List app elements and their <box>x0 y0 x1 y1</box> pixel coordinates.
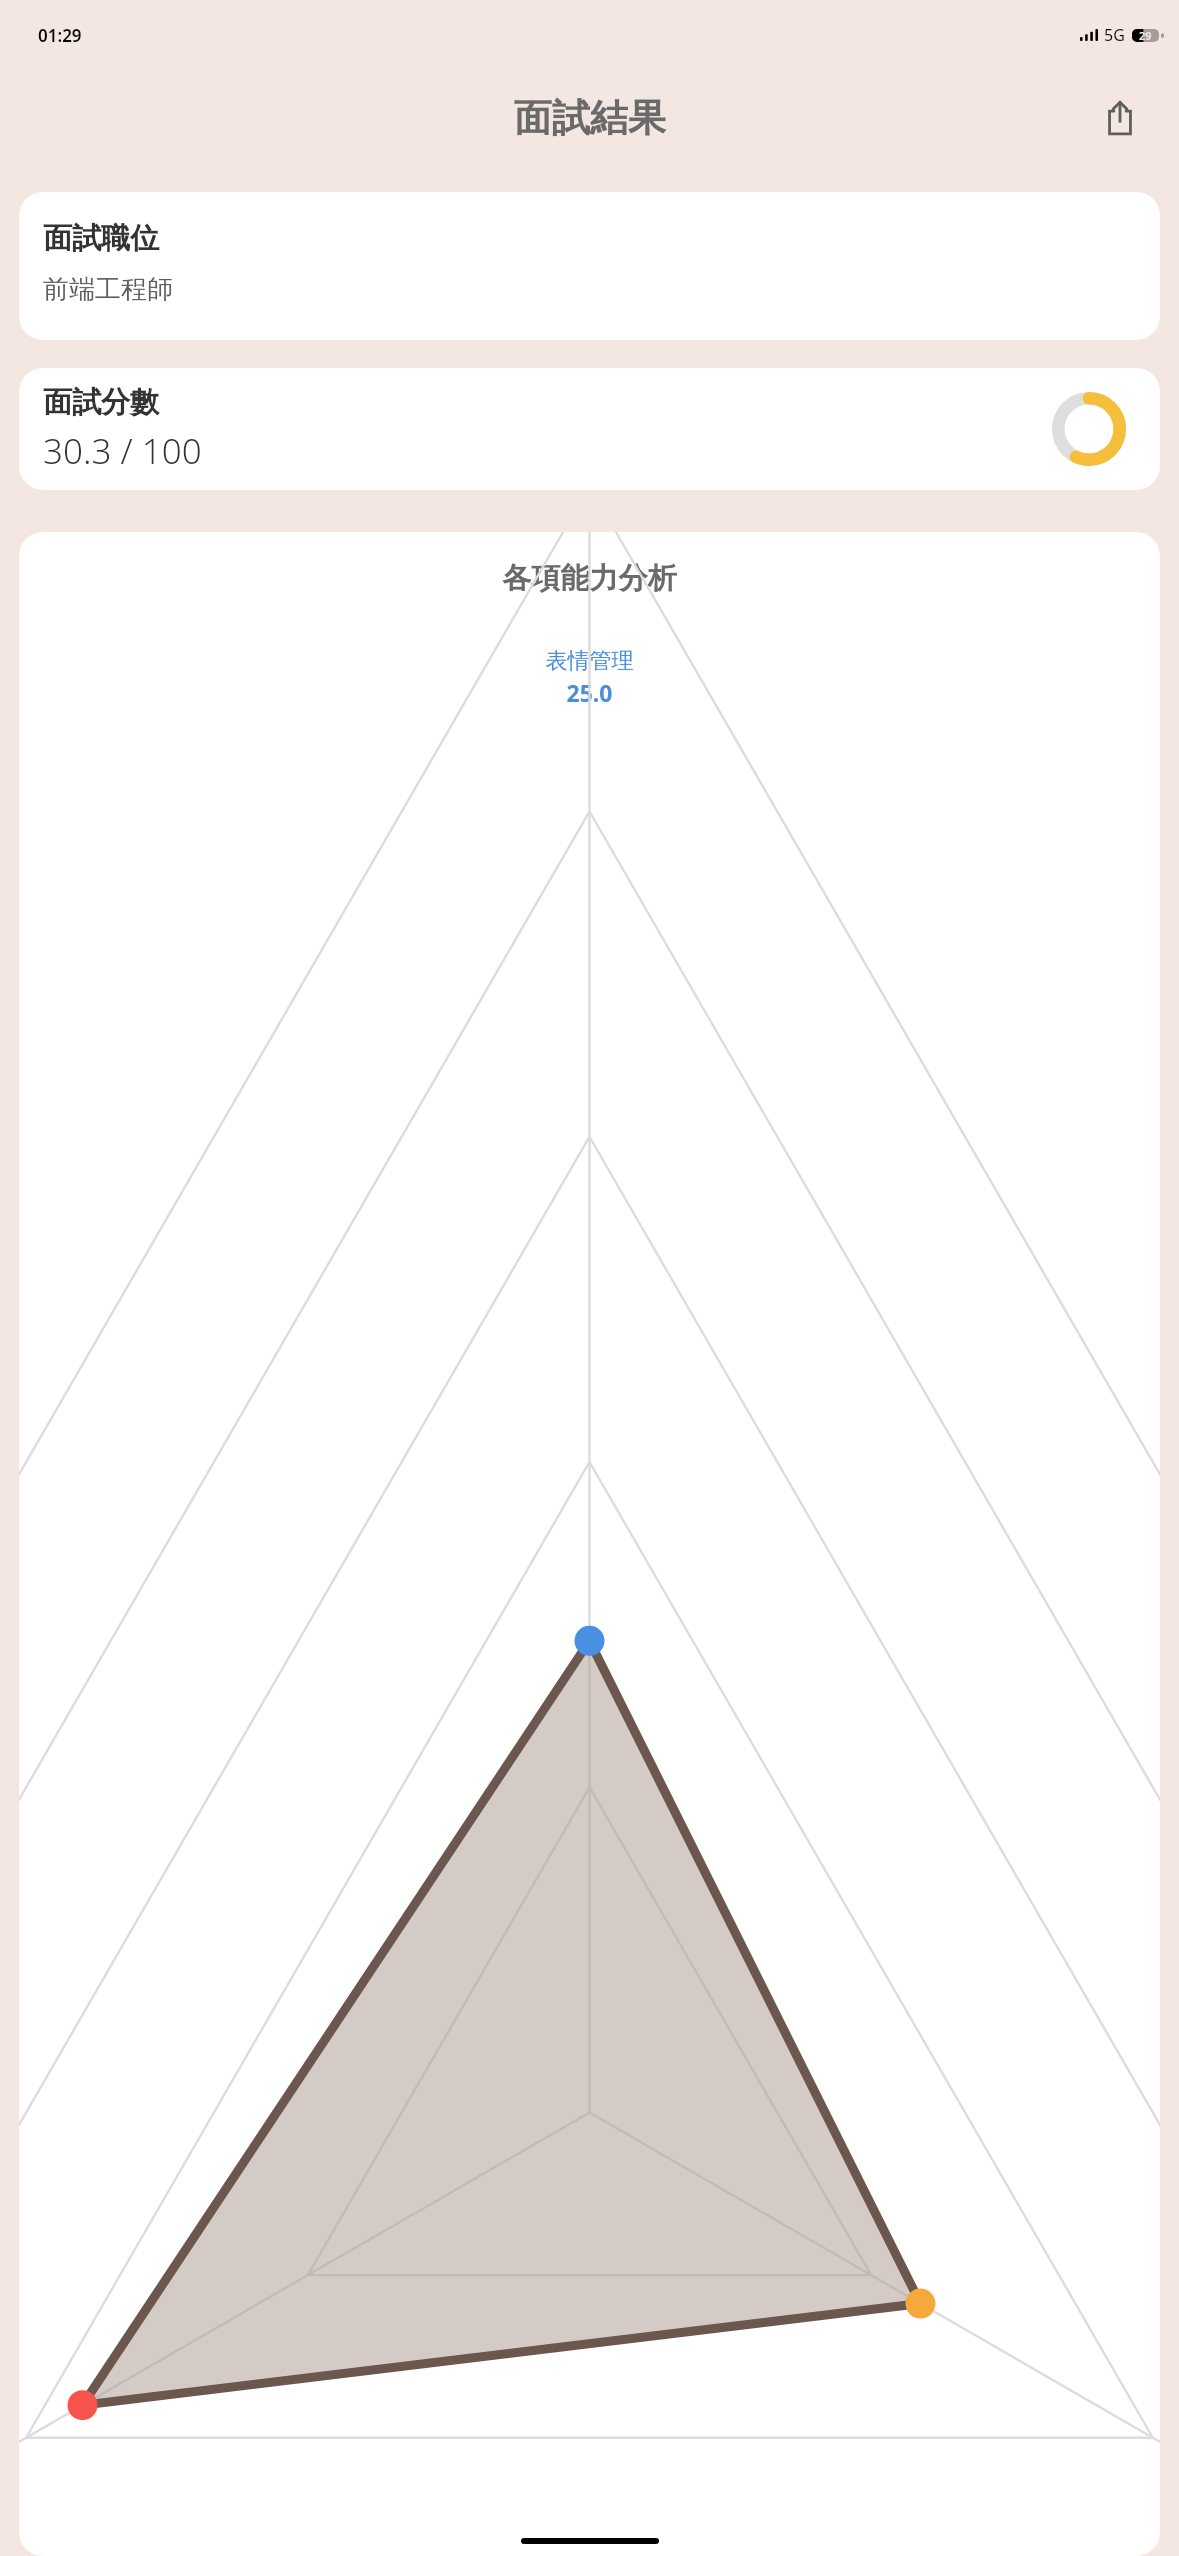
staticText: 前端工程師 <box>43 273 173 306</box>
staticText: 表情管理 <box>19 647 1160 675</box>
button[interactable]: 各項能力分析 <box>19 532 1160 2556</box>
staticText: 30.3 / 100 <box>43 427 202 475</box>
staticText: 各項能力分析 <box>19 560 1160 597</box>
staticText: 面試結果 <box>514 94 666 142</box>
staticText: 面試職位 <box>43 220 159 257</box>
button[interactable]: 面試分數 <box>19 368 1160 490</box>
staticText: 面試分數 <box>43 384 159 421</box>
button[interactable]: 面試職位 <box>19 192 1160 340</box>
staticText: 5G <box>1104 24 1125 46</box>
staticText: 29 <box>1139 28 1152 43</box>
staticText: 25.0 <box>19 677 1160 708</box>
button[interactable]: Share <box>1091 89 1149 147</box>
staticText: 01:29 <box>38 24 82 47</box>
